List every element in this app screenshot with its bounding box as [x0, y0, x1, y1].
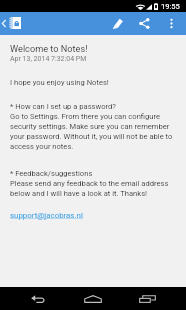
staticText: Welcome to Notes!	[10, 43, 88, 54]
staticText: * Feedback/suggestions Please send any f…	[10, 169, 176, 198]
staticText: Apr 13, 2014 7:32:04 PM	[10, 55, 87, 63]
button[interactable]: support@jacobras.nl	[10, 211, 83, 220]
staticText: 19:55	[161, 2, 180, 11]
button[interactable]: Edit	[104, 12, 131, 35]
staticText: * How can I set up a password? Go to Set…	[10, 102, 176, 151]
button[interactable]: Home	[76, 287, 110, 310]
staticText: I hope you enjoy using Notes!	[10, 78, 109, 87]
button[interactable]: Back	[23, 287, 53, 310]
button[interactable]: Share	[131, 12, 158, 35]
button[interactable]: More options	[158, 12, 185, 35]
button[interactable]: Navigate up	[0, 12, 24, 35]
button[interactable]: Recent apps	[131, 287, 164, 310]
